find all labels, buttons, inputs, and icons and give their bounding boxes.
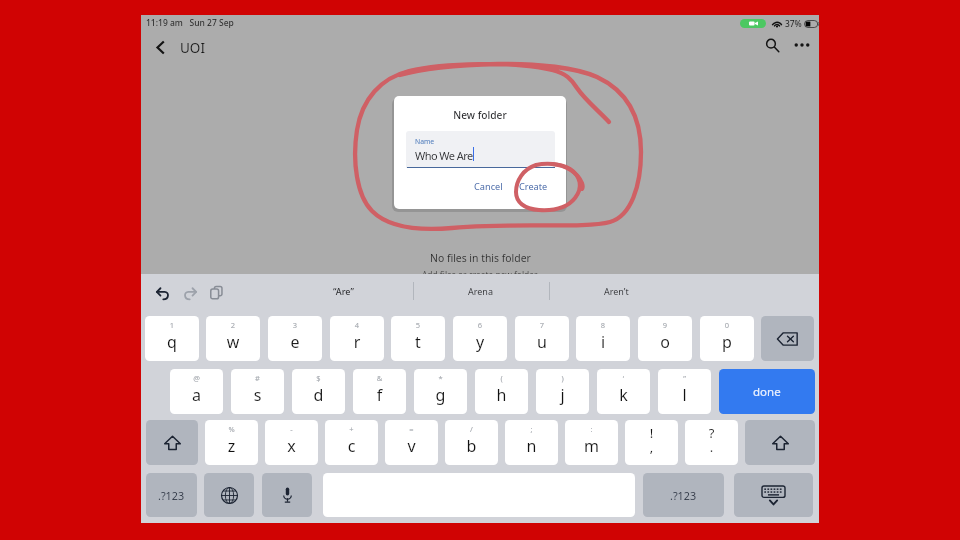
button[interactable]: Shift xyxy=(745,420,815,465)
staticText: New folder xyxy=(394,108,566,122)
staticText: ‘ xyxy=(597,373,650,383)
staticText: y xyxy=(453,331,507,353)
button[interactable]: Aren’t xyxy=(554,274,679,308)
button[interactable]: Change keyboard language xyxy=(204,473,254,517)
button[interactable]: 2 xyxy=(206,316,260,361)
staticText: 8 xyxy=(576,320,630,330)
button[interactable]: 4 xyxy=(330,316,384,361)
button[interactable]: Backspace xyxy=(761,316,814,361)
button[interactable]: + xyxy=(325,420,378,465)
button[interactable]: done xyxy=(719,369,815,414)
button[interactable]: 0 xyxy=(700,316,754,361)
button[interactable]: = xyxy=(385,420,438,465)
button[interactable]: ‘ xyxy=(597,369,650,414)
button[interactable]: Redo xyxy=(180,283,199,302)
staticText: # xyxy=(231,373,284,383)
staticText: u xyxy=(515,331,569,353)
staticText: UOI xyxy=(180,39,205,57)
button[interactable]: @ xyxy=(170,369,223,414)
button[interactable]: ” xyxy=(658,369,711,414)
staticText: i xyxy=(576,331,630,353)
staticText: .?123 xyxy=(670,488,697,503)
staticText: Create xyxy=(519,180,548,193)
button[interactable]: 6 xyxy=(453,316,507,361)
staticText: Cancel xyxy=(474,180,503,193)
staticText: d xyxy=(292,384,345,406)
staticText: l xyxy=(658,384,711,406)
button[interactable]: Shift xyxy=(146,420,198,465)
staticText: Add files or create new folder xyxy=(422,269,538,280)
staticText: 6 xyxy=(453,320,507,330)
staticText: b xyxy=(445,435,498,457)
button[interactable]: Hide keyboard xyxy=(734,473,813,517)
staticText: $ xyxy=(292,373,345,383)
staticText: v xyxy=(385,435,438,457)
staticText: @ xyxy=(170,373,223,383)
staticText: e xyxy=(268,331,322,353)
button[interactable]: # xyxy=(231,369,284,414)
button[interactable]: Arena xyxy=(418,274,543,308)
button[interactable]: Create xyxy=(514,175,553,198)
button[interactable]: ) xyxy=(536,369,589,414)
button[interactable]: Search xyxy=(756,29,788,61)
staticText: .?123 xyxy=(158,488,185,503)
staticText: s xyxy=(231,384,284,406)
staticText: ” xyxy=(658,373,711,383)
staticText: . xyxy=(685,438,738,456)
button[interactable]: .?123 xyxy=(146,473,197,517)
button[interactable]: Undo xyxy=(153,283,172,302)
button[interactable]: % xyxy=(205,420,258,465)
staticText: 2 xyxy=(206,320,260,330)
staticText: w xyxy=(206,331,260,353)
staticText: 9 xyxy=(638,320,692,330)
staticText: ) xyxy=(536,373,589,383)
button[interactable]: : xyxy=(565,420,618,465)
staticText: f xyxy=(353,384,406,406)
button[interactable]: ( xyxy=(475,369,528,414)
button[interactable]: Cancel xyxy=(469,175,508,198)
staticText: done xyxy=(753,384,781,400)
button[interactable]: “Are” xyxy=(281,274,406,308)
button[interactable]: ; xyxy=(505,420,558,465)
button[interactable]: 8 xyxy=(576,316,630,361)
button[interactable]: 3 xyxy=(268,316,322,361)
staticText: n xyxy=(505,435,558,457)
button[interactable]: - xyxy=(265,420,318,465)
staticText: 37% xyxy=(785,18,802,29)
staticText: o xyxy=(638,331,692,353)
button[interactable]: Paste xyxy=(207,283,226,302)
button[interactable]: Voice input xyxy=(262,473,312,517)
button[interactable]: .?123 xyxy=(643,473,724,517)
button[interactable]: Back xyxy=(144,31,176,63)
staticText: 7 xyxy=(515,320,569,330)
button[interactable]: * xyxy=(414,369,467,414)
staticText: % xyxy=(205,424,258,434)
staticText: x xyxy=(265,435,318,457)
staticText: * xyxy=(414,373,467,383)
staticText: c xyxy=(325,435,378,457)
staticText: 3 xyxy=(268,320,322,330)
button[interactable]: More options xyxy=(786,29,818,61)
staticText: j xyxy=(536,384,589,406)
button[interactable]: $ xyxy=(292,369,345,414)
button[interactable]: 1 xyxy=(145,316,199,361)
staticText: + xyxy=(325,424,378,434)
button[interactable]: 7 xyxy=(515,316,569,361)
staticText: / xyxy=(445,424,498,434)
staticText: “Are” xyxy=(333,285,354,297)
button[interactable]: 9 xyxy=(638,316,692,361)
staticText: ; xyxy=(505,424,558,434)
button[interactable]: & xyxy=(353,369,406,414)
button[interactable]: / xyxy=(445,420,498,465)
staticText: Name xyxy=(415,137,435,146)
staticText: ! xyxy=(625,424,678,442)
button[interactable]: ! xyxy=(625,420,678,465)
button[interactable]: 5 xyxy=(391,316,445,361)
button[interactable]: ? xyxy=(685,420,738,465)
staticText: ( xyxy=(475,373,528,383)
staticText: Who We Are xyxy=(415,148,473,163)
staticText: - xyxy=(265,424,318,434)
staticText: t xyxy=(391,331,445,353)
staticText: a xyxy=(170,384,223,406)
